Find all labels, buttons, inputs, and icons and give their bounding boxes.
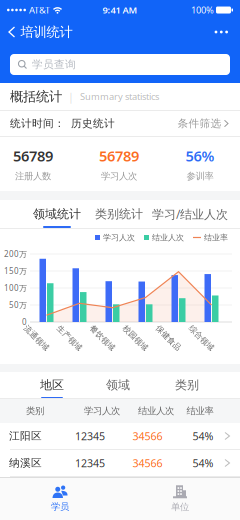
staticText: 100万 — [4, 283, 27, 293]
staticText: 江阳区 — [9, 429, 42, 442]
staticText: 注册人数 — [15, 170, 51, 182]
button[interactable]: 学员 — [0, 478, 120, 520]
staticText: 地区 — [40, 378, 64, 392]
staticText: 学员 — [51, 501, 69, 512]
button[interactable]: 地区 — [13, 371, 91, 399]
staticText: 34566 — [132, 456, 162, 470]
staticText: 结业率 — [204, 233, 228, 242]
button[interactable]: More — [215, 31, 240, 33]
staticText: 56789 — [99, 146, 139, 165]
button[interactable]: 类别 — [148, 371, 226, 399]
staticText: 培训统计 — [20, 24, 72, 40]
button[interactable]: 领域统计 — [18, 200, 96, 228]
staticText: 综合领域 — [185, 333, 217, 343]
staticText: 54% — [192, 456, 213, 470]
staticText: 参训率 — [186, 170, 213, 182]
staticText: 保健食品 — [152, 333, 184, 343]
staticText: 纳溪区 — [9, 456, 42, 469]
staticText: 56% — [185, 146, 214, 165]
staticText: 结业率 — [186, 405, 213, 417]
button[interactable]: 纳溪区 — [0, 450, 240, 476]
staticText: 9:41 AM — [102, 4, 137, 16]
staticText: 34566 — [132, 429, 162, 443]
staticText: 50万 — [9, 300, 27, 310]
staticText: 统计时间： 历史统计 — [10, 117, 115, 130]
staticText: Summary statistics — [80, 90, 159, 103]
staticText: 100% — [191, 4, 214, 16]
button[interactable]: 学员查询 — [0, 54, 240, 75]
button[interactable]: 学习/结业人次 — [151, 200, 229, 228]
staticText: 0 — [22, 317, 27, 327]
staticText: 结业人次 — [138, 405, 174, 417]
staticText: 单位 — [171, 501, 189, 513]
staticText: 54% — [192, 429, 213, 443]
staticText: 学员查询 — [32, 58, 76, 71]
button[interactable]: 条件筛选 — [177, 117, 228, 130]
button[interactable]: 领域 — [79, 371, 157, 399]
button[interactable]: 单位 — [120, 478, 240, 520]
staticText: 条件筛选 — [177, 117, 221, 130]
button[interactable]: 类别统计 — [80, 200, 158, 228]
staticText: 学习/结业人次 — [152, 206, 228, 222]
staticText: 餐饮领域 — [86, 333, 118, 343]
staticText: AT&T — [29, 4, 50, 16]
staticText: 概括统计 — [10, 88, 62, 105]
staticText: 150万 — [4, 266, 27, 276]
button[interactable]: 江阳区 — [0, 423, 240, 449]
staticText: 学习人次 — [84, 405, 120, 417]
staticText: 流通领域 — [20, 333, 52, 343]
staticText: 200万 — [4, 249, 27, 259]
button[interactable]: Back — [0, 24, 72, 40]
staticText: 领域 — [106, 378, 130, 392]
staticText: 12345 — [75, 456, 105, 470]
staticText: | — [68, 89, 74, 104]
staticText: 结业人次 — [152, 233, 184, 242]
staticText: 生产领域 — [53, 333, 85, 343]
staticText: 类别 — [175, 378, 199, 392]
staticText: 领域统计 — [33, 207, 81, 221]
staticText: 学习人次 — [103, 233, 135, 242]
staticText: 12345 — [75, 429, 105, 443]
staticText: 56789 — [13, 146, 53, 165]
staticText: 校园领域 — [119, 333, 151, 343]
staticText: 学习人次 — [101, 170, 137, 182]
staticText: 类别 — [26, 405, 44, 417]
staticText: 类别统计 — [95, 207, 143, 221]
